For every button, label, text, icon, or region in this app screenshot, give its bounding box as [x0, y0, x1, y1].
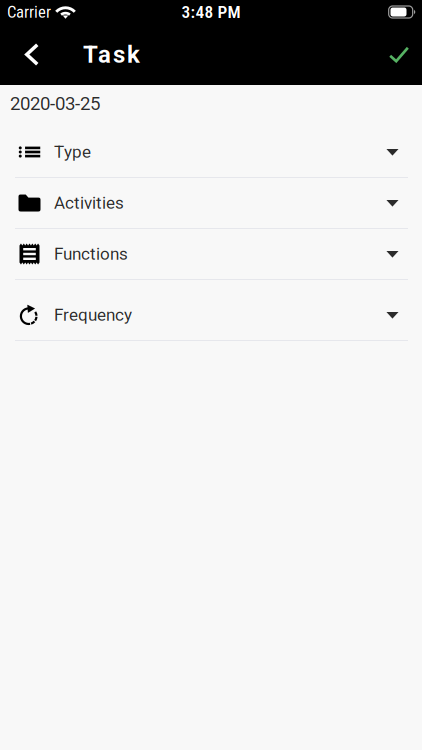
button[interactable]: Frequency	[0, 280, 422, 341]
staticText: Functions	[54, 244, 128, 264]
staticText: 3:48 PM	[181, 2, 240, 22]
staticText: Frequency	[54, 305, 132, 325]
button[interactable]: Save	[377, 28, 421, 80]
staticText: Task	[83, 40, 140, 68]
button[interactable]: Functions	[0, 229, 422, 280]
button[interactable]: Activities	[0, 178, 422, 229]
staticText: 2020-03-25	[10, 93, 100, 114]
staticText: Activities	[54, 193, 124, 213]
staticText: Carrier	[7, 2, 51, 22]
button[interactable]: Back	[10, 28, 54, 80]
button[interactable]: Type	[0, 127, 422, 178]
staticText: Type	[54, 142, 91, 162]
